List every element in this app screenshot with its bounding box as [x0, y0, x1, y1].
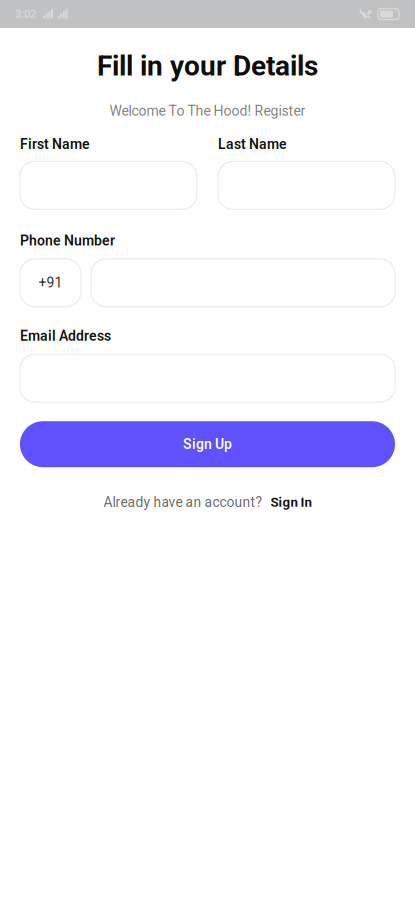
- staticText: Phone Number: [20, 232, 115, 249]
- staticText: Already have an account?: [103, 494, 262, 510]
- staticText: Last Name: [218, 136, 287, 152]
- staticText: Sign In: [270, 494, 311, 510]
- button[interactable]: Sign In: [270, 494, 311, 510]
- button[interactable]: Sign Up: [20, 421, 395, 467]
- staticText: First Name: [20, 136, 90, 152]
- staticText: Welcome To The Hood! Register: [109, 103, 305, 119]
- staticText: Sign Up: [183, 436, 232, 452]
- staticText: Fill in your Details: [97, 50, 318, 82]
- staticText: 3:02: [15, 7, 36, 21]
- staticText: +91: [38, 275, 62, 291]
- staticText: Email Address: [20, 328, 111, 344]
